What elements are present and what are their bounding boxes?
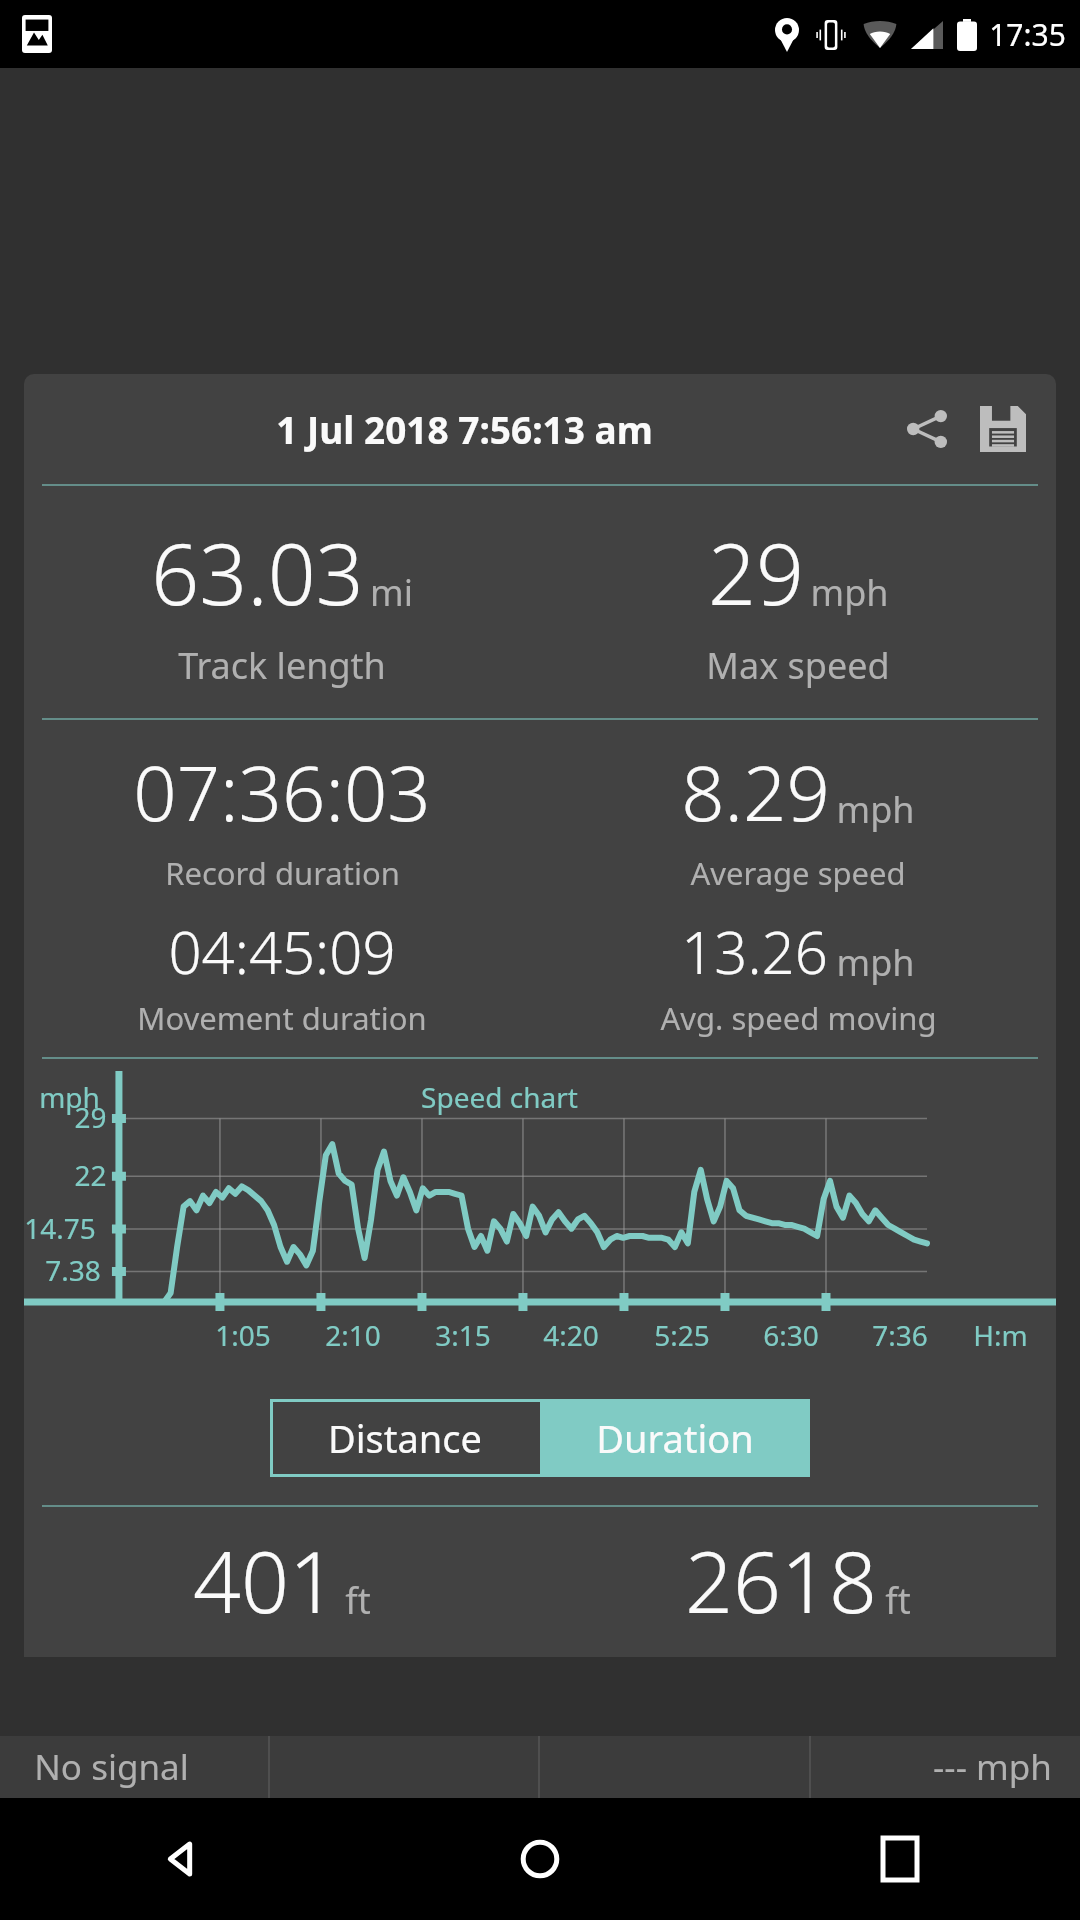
staticText: 7.38	[45, 1251, 101, 1289]
staticText: 401	[193, 1523, 337, 1637]
button[interactable]: Back	[0, 1798, 360, 1920]
staticText: ft	[885, 1576, 911, 1625]
staticText: mph	[836, 785, 915, 834]
staticText: Duration	[596, 1412, 754, 1464]
staticText: mph	[39, 1078, 100, 1116]
staticText: 8.29	[681, 740, 830, 844]
staticText: 13.26	[681, 912, 828, 991]
staticText: 14.75	[24, 1209, 96, 1247]
button[interactable]: Duration	[540, 1399, 810, 1477]
staticText: 3:15	[435, 1316, 491, 1354]
staticText: 1:05	[215, 1316, 271, 1354]
staticText: 17:35	[989, 14, 1066, 55]
button[interactable]: Distance	[270, 1399, 540, 1477]
staticText: ft	[345, 1576, 371, 1625]
staticText: 29	[708, 515, 804, 629]
staticText: 7:36	[872, 1316, 928, 1354]
button[interactable]: Save	[972, 398, 1034, 460]
staticText: H:m	[973, 1316, 1028, 1354]
button[interactable]: Home	[360, 1798, 720, 1920]
button[interactable]: Recent apps	[720, 1798, 1080, 1920]
staticText: 1 Jul 2018 7:56:13 am	[276, 404, 653, 454]
staticText: 2:10	[325, 1316, 381, 1354]
staticText: Movement duration	[137, 997, 427, 1039]
staticText: Track length	[178, 641, 386, 690]
staticText: 07:36:03	[133, 740, 431, 844]
staticText: Record duration	[165, 852, 400, 894]
staticText: Distance	[328, 1412, 482, 1464]
staticText: 22	[74, 1156, 107, 1194]
staticText: No signal	[34, 1743, 189, 1791]
staticText: Average speed	[690, 852, 906, 894]
staticText: 4:20	[543, 1316, 599, 1354]
staticText: 6:30	[763, 1316, 819, 1354]
staticText: --- mph	[933, 1743, 1052, 1791]
staticText: Max speed	[706, 641, 890, 690]
staticText: 04:45:09	[168, 912, 396, 991]
staticText: Avg. speed moving	[660, 997, 937, 1039]
button[interactable]: Share	[896, 398, 958, 460]
staticText: 63.03	[151, 515, 364, 629]
staticText: 5:25	[654, 1316, 710, 1354]
staticText: 29	[74, 1098, 107, 1136]
staticText: 2618	[685, 1523, 877, 1637]
staticText: mph	[810, 568, 889, 617]
staticText: Speed chart	[421, 1078, 578, 1116]
staticText: mph	[836, 938, 915, 987]
staticText: mi	[370, 568, 413, 617]
